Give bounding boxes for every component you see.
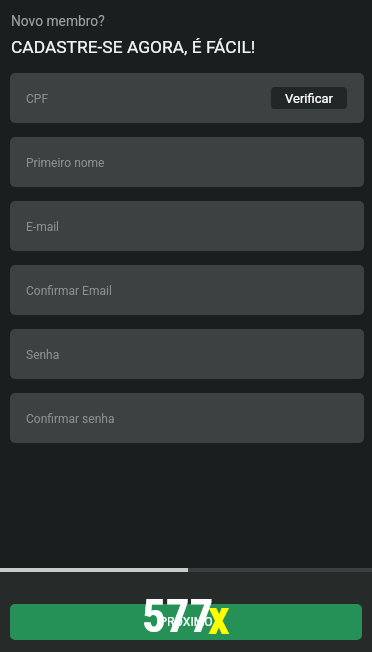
staticText: PRÓXIMO bbox=[159, 615, 213, 629]
staticText: 577 bbox=[142, 588, 214, 643]
button[interactable]: Confirmar senha bbox=[10, 393, 364, 443]
button[interactable]: Verificar bbox=[271, 87, 347, 109]
button[interactable]: E-mail bbox=[10, 201, 364, 251]
button[interactable]: Senha bbox=[10, 329, 364, 379]
staticText: CADASTRE-SE AGORA, É FÁCIL! bbox=[11, 37, 256, 57]
staticText: Novo membro? bbox=[11, 13, 105, 29]
staticText: Confirmar Email bbox=[26, 284, 112, 298]
button[interactable]: Confirmar Email bbox=[10, 265, 364, 315]
staticText: Senha bbox=[26, 348, 60, 362]
staticText: CPF bbox=[26, 92, 49, 106]
button[interactable]: CPF bbox=[10, 73, 364, 123]
staticText: E-mail bbox=[26, 220, 60, 234]
button[interactable]: Primeiro nome bbox=[10, 137, 364, 187]
staticText: x bbox=[208, 589, 230, 645]
staticText: Primeiro nome bbox=[26, 156, 105, 170]
button[interactable]: PRÓXIMO bbox=[10, 604, 362, 640]
staticText: Confirmar senha bbox=[26, 412, 115, 426]
staticText: Verificar bbox=[285, 91, 333, 106]
other: Progresso do cadastro bbox=[0, 568, 372, 572]
